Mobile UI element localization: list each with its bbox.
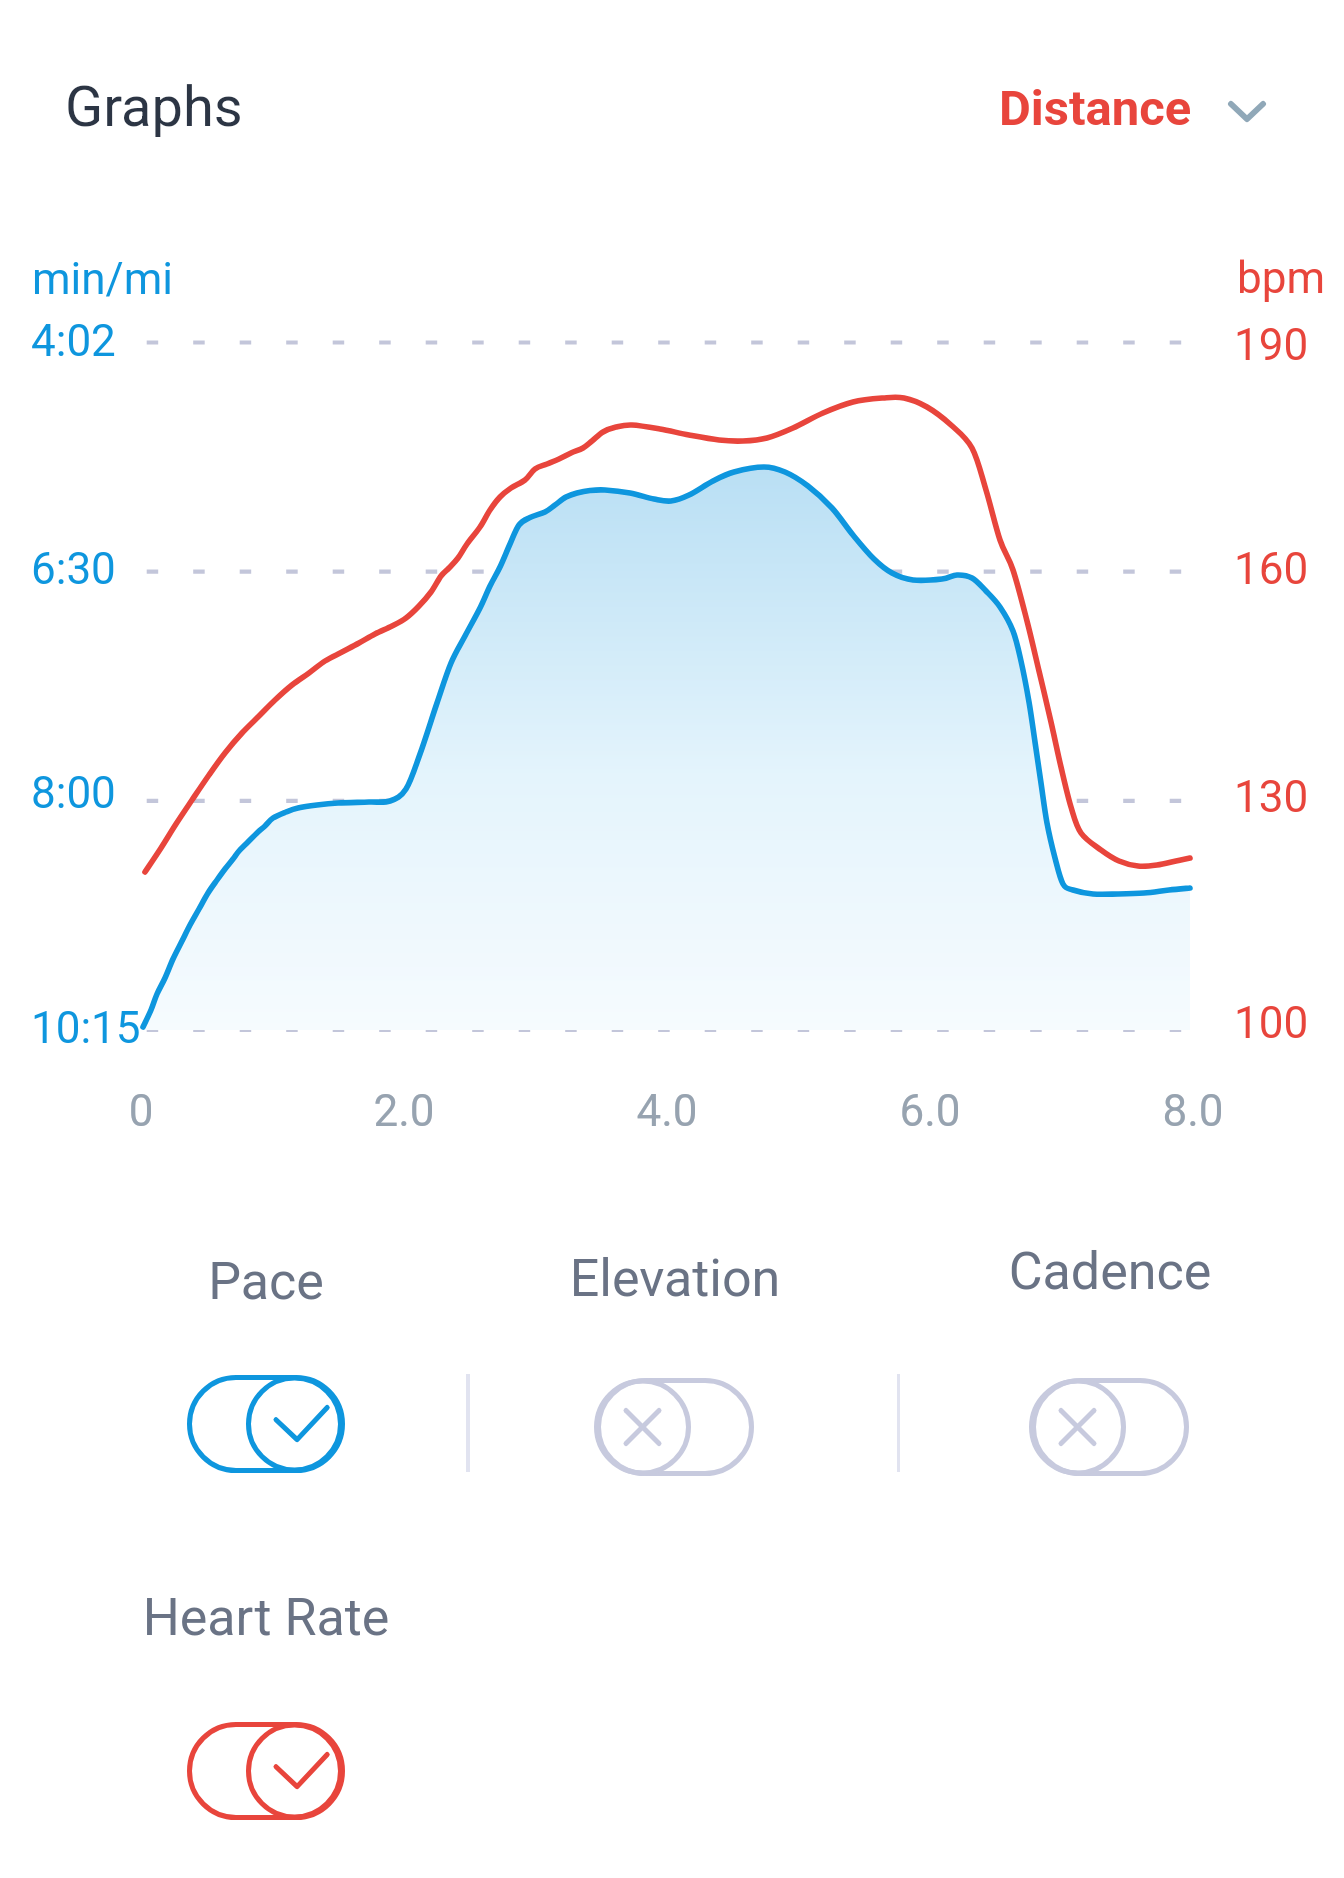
staticText: min/mi	[32, 253, 174, 305]
staticText: 6.0	[860, 1085, 1000, 1137]
staticText: 6:30	[31, 543, 116, 595]
button[interactable]: Heart Rate	[106, 1587, 426, 1827]
staticText: 8:00	[31, 767, 116, 819]
staticText: Heart Rate	[106, 1587, 426, 1648]
staticText: 190	[1234, 319, 1309, 371]
button[interactable]: Pace	[106, 1251, 426, 1491]
staticText: 8.0	[1123, 1085, 1263, 1137]
other: Change metric	[1228, 101, 1266, 122]
staticText: 0	[71, 1085, 211, 1137]
staticText: 4:02	[31, 315, 116, 367]
staticText: Elevation	[515, 1248, 835, 1309]
staticText: 130	[1234, 771, 1309, 823]
staticText: bpm	[1237, 252, 1325, 304]
staticText: 10:15	[31, 1002, 141, 1054]
staticText: 4.0	[597, 1085, 737, 1137]
button[interactable]: Cadence	[950, 1241, 1270, 1481]
staticText: Distance	[999, 80, 1192, 137]
button[interactable]: Distance	[999, 80, 1266, 137]
button[interactable]: Elevation	[515, 1248, 835, 1488]
staticText: Graphs	[65, 74, 243, 140]
staticText: 160	[1234, 543, 1309, 595]
button[interactable]: Graphs	[65, 74, 243, 140]
staticText: 2.0	[334, 1085, 474, 1137]
staticText: Pace	[106, 1251, 426, 1312]
staticText: 100	[1234, 997, 1309, 1049]
staticText: Cadence	[950, 1241, 1270, 1302]
